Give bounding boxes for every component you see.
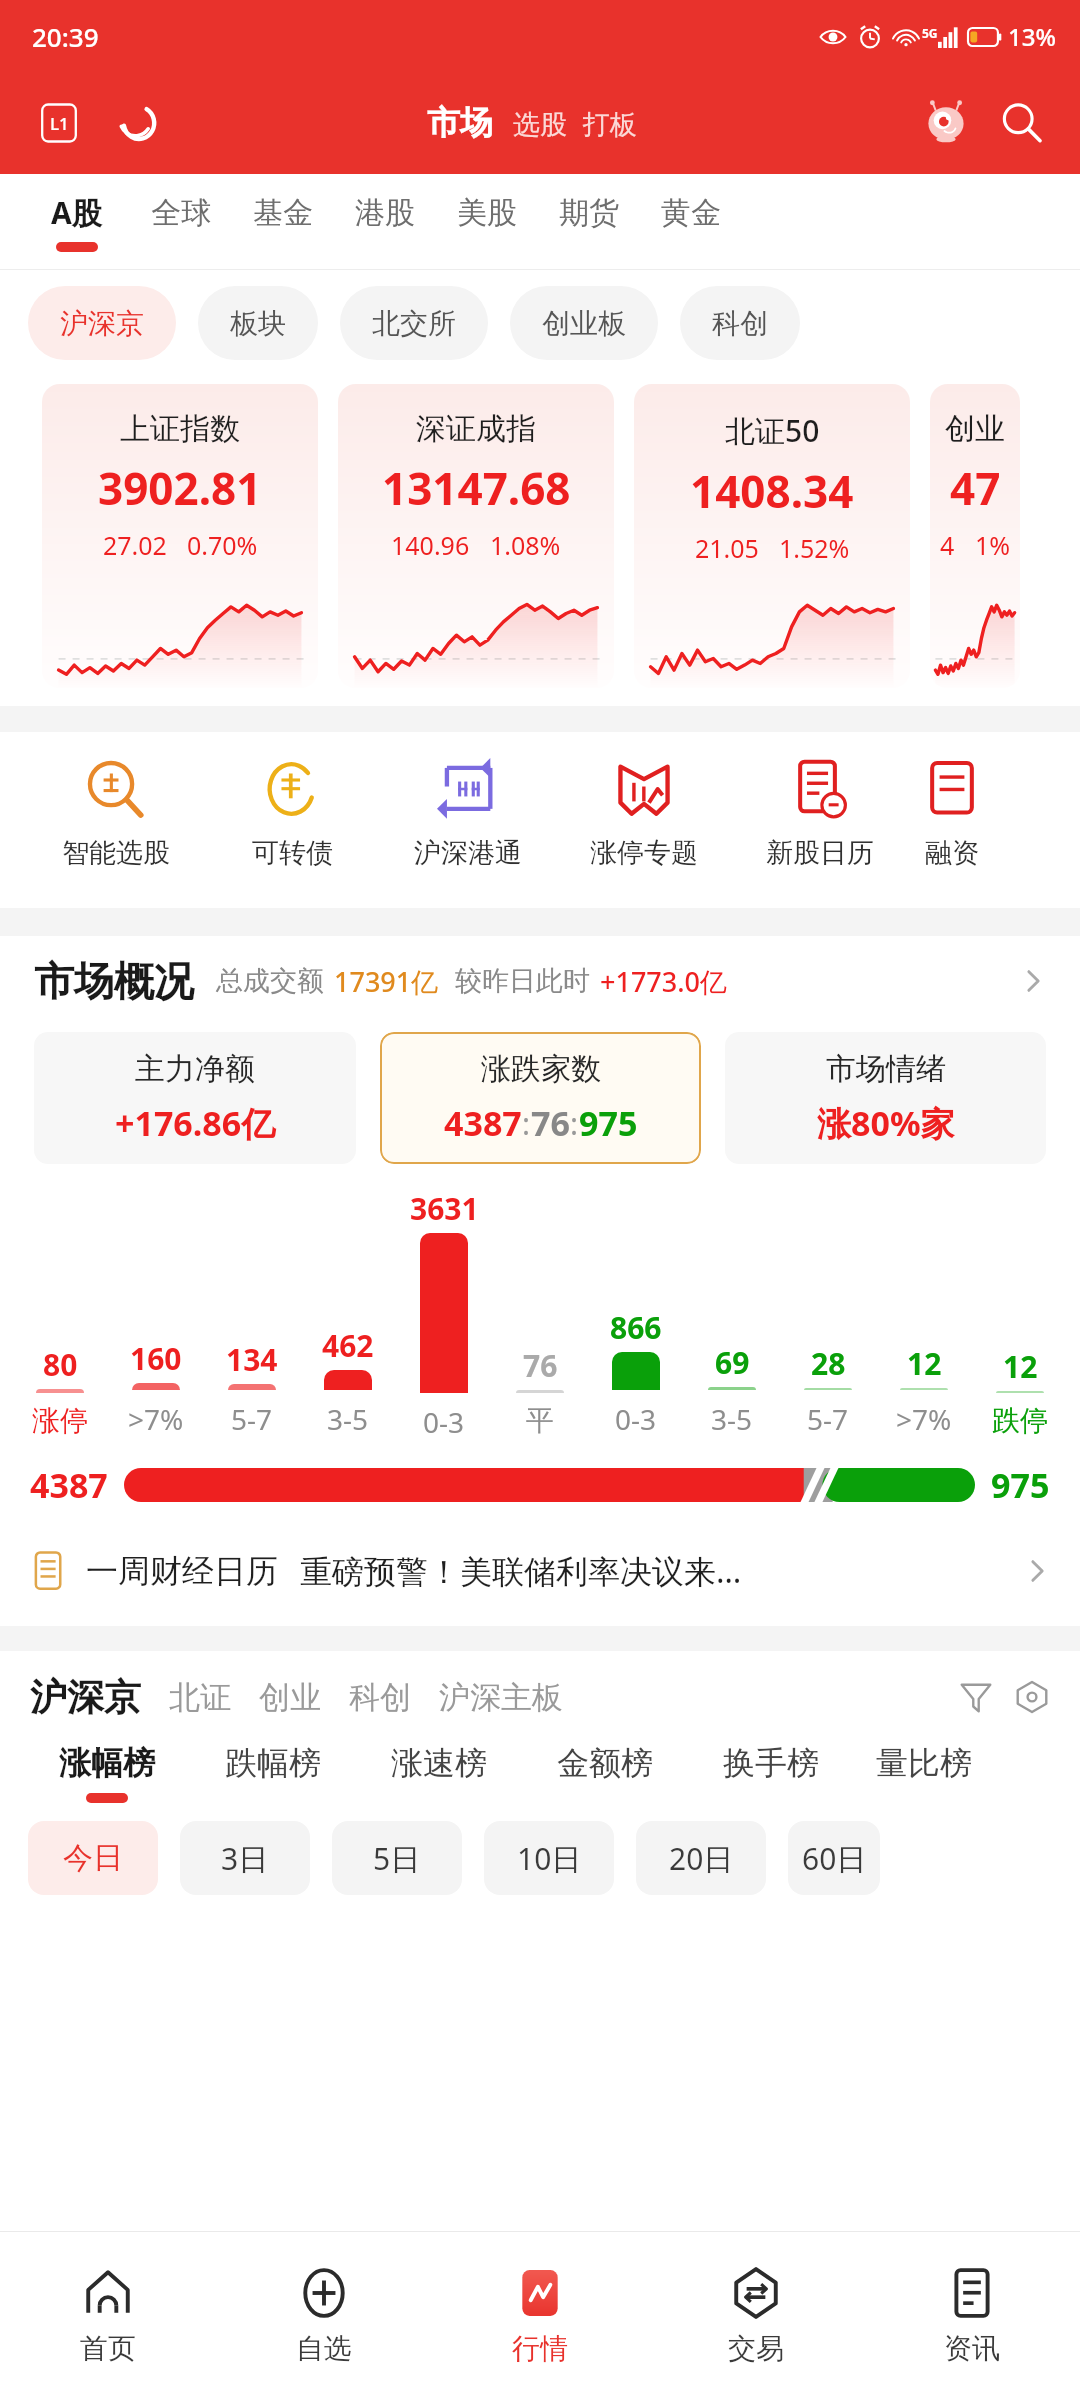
staticText: 13147.68 [382, 458, 571, 518]
staticText: 自选 [296, 2331, 352, 2366]
staticText: 80 [43, 1344, 78, 1385]
button[interactable]: Filter [952, 1673, 1000, 1721]
button[interactable]: 融资 [908, 758, 996, 870]
button[interactable]: 智能选股 [28, 758, 204, 870]
button[interactable]: 交易 [648, 2232, 864, 2400]
staticText: 港股 [355, 194, 415, 232]
staticText: 今日 [63, 1839, 123, 1877]
button[interactable]: 今日 [28, 1821, 158, 1895]
staticText: 市场 [427, 102, 493, 144]
staticText: 总成交额 [216, 964, 324, 998]
button[interactable]: 主力净额 [34, 1032, 356, 1164]
button[interactable]: 一周财经日历 [30, 1530, 1050, 1612]
button[interactable]: 量比榜 [854, 1743, 994, 1803]
staticText: 上证指数 [120, 410, 240, 448]
button[interactable]: 科创 [349, 1678, 411, 1717]
button[interactable]: 60日 [788, 1821, 880, 1895]
button[interactable]: Night mode [116, 100, 162, 146]
button[interactable]: 市场情绪 [725, 1032, 1046, 1164]
button[interactable]: 涨速榜 [356, 1743, 522, 1803]
staticText: 跌停 [992, 1403, 1048, 1438]
button[interactable]: 深证成指 [338, 384, 614, 688]
staticText: 涨跌家数 [481, 1050, 601, 1088]
staticText: 较昨日此时 [455, 964, 590, 998]
staticText: 主力净额 [135, 1050, 255, 1088]
button[interactable]: 3日 [180, 1821, 310, 1895]
button[interactable]: 5日 [332, 1821, 462, 1895]
button[interactable]: A股 [22, 174, 130, 270]
button[interactable]: 科创 [680, 286, 800, 360]
button[interactable]: 资讯 [864, 2232, 1080, 2400]
button[interactable]: 市场概况 [34, 956, 1046, 1006]
staticText: +176.86亿 [115, 1100, 276, 1146]
staticText: 0-3 [423, 1403, 465, 1438]
staticText: 21.05 [695, 531, 759, 565]
staticText: 涨停专题 [590, 836, 698, 870]
staticText: 选股 [513, 108, 567, 142]
button[interactable]: 沪深港通 [380, 758, 556, 870]
button[interactable]: 打板 [583, 108, 637, 144]
button[interactable]: 黄金 [640, 174, 742, 270]
button[interactable]: Level 1 quote [36, 100, 82, 146]
button[interactable]: 沪深主板 [439, 1678, 563, 1717]
staticText: 47 [950, 458, 1001, 518]
staticText: 行情 [512, 2331, 568, 2366]
button[interactable]: 全球 [130, 174, 232, 270]
button[interactable]: 10日 [484, 1821, 614, 1895]
button[interactable]: 基金 [232, 174, 334, 270]
button[interactable]: 可转债 [204, 758, 380, 870]
button[interactable]: 北证 [169, 1678, 231, 1717]
staticText: 1.52% [779, 531, 850, 565]
button[interactable]: 创业 [259, 1678, 321, 1717]
staticText: 智能选股 [62, 836, 170, 870]
staticText: 涨停 [32, 1403, 88, 1438]
button[interactable]: Assistant [918, 95, 974, 151]
button[interactable]: 新股日历 [732, 758, 908, 870]
button[interactable]: 板块 [198, 286, 318, 360]
staticText: 打板 [583, 108, 637, 142]
button[interactable]: 沪深京 [30, 1674, 141, 1721]
button[interactable]: 涨跌家数 [380, 1032, 701, 1164]
staticText: 5-7 [807, 1400, 849, 1438]
button[interactable]: 期货 [538, 174, 640, 270]
button[interactable]: 沪深京 [28, 286, 176, 360]
button[interactable]: 选股 [513, 108, 567, 144]
staticText: L1 [50, 112, 69, 135]
staticText: 27.02 [103, 528, 167, 562]
button[interactable]: 金额榜 [522, 1743, 688, 1803]
button[interactable]: 北交所 [340, 286, 488, 360]
button[interactable]: 上证指数 [42, 384, 318, 688]
staticText: 市场情绪 [826, 1050, 946, 1088]
button[interactable]: 行情 [432, 2232, 648, 2400]
button[interactable]: 港股 [334, 174, 436, 270]
button[interactable]: 跌幅榜 [190, 1743, 356, 1803]
button[interactable]: 首页 [0, 2232, 216, 2400]
staticText: 462 [322, 1325, 374, 1366]
button[interactable]: 北证50 [634, 384, 910, 688]
staticText: 3-5 [711, 1400, 753, 1438]
staticText: 13% [1008, 20, 1056, 53]
staticText: 市场概况 [34, 956, 194, 1006]
staticText: +1773.0亿 [600, 963, 728, 1000]
staticText: 黄金 [661, 194, 721, 232]
button[interactable]: 创业 [930, 384, 1020, 688]
staticText: 76 [523, 1345, 558, 1386]
staticText: 5日 [373, 1838, 421, 1879]
button[interactable]: 美股 [436, 174, 538, 270]
button[interactable]: Settings [1008, 1673, 1056, 1721]
button[interactable]: 20日 [636, 1821, 766, 1895]
button[interactable]: 涨停专题 [556, 758, 732, 870]
staticText: >7% [128, 1400, 184, 1438]
staticText: 资讯 [944, 2331, 1000, 2366]
button[interactable]: 自选 [216, 2232, 432, 2400]
button[interactable]: 换手榜 [688, 1743, 854, 1803]
staticText: 5-7 [231, 1400, 273, 1438]
button[interactable]: 市场 [427, 102, 493, 144]
staticText: : [570, 1103, 579, 1144]
button[interactable]: 创业板 [510, 286, 658, 360]
button[interactable]: 涨幅榜 [24, 1743, 190, 1803]
button[interactable]: Search [994, 95, 1050, 151]
staticText: 跌幅榜 [225, 1743, 321, 1783]
staticText: 975 [991, 1462, 1050, 1508]
staticText: 3631 [410, 1188, 479, 1229]
